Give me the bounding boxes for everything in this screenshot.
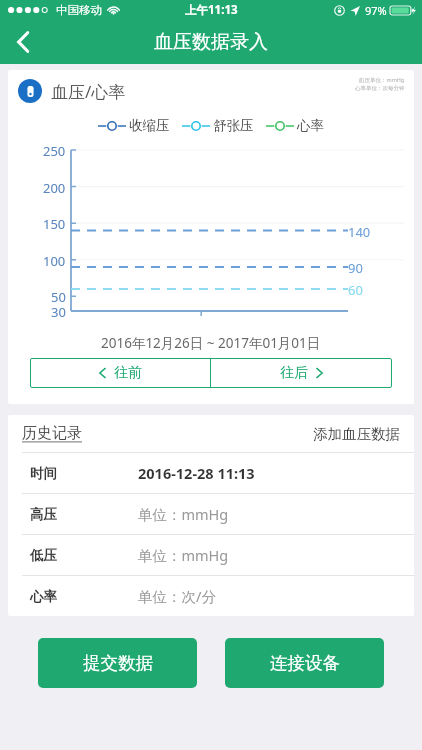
staticText: 低压 (30, 547, 57, 564)
staticText: 时间 (30, 465, 57, 482)
button[interactable]: 提交数据 (38, 638, 197, 688)
button[interactable]: 时间 (8, 452, 414, 493)
staticText: 血压数据录入 (154, 30, 268, 54)
staticText: 90 (348, 259, 363, 277)
staticText: 心率 (297, 117, 324, 134)
staticText: 30 (51, 303, 66, 321)
staticText: 上午11:13 (185, 2, 238, 18)
staticText: 收缩压 (129, 117, 170, 134)
staticText: 提交数据 (83, 652, 153, 674)
staticText: 心率 (30, 588, 57, 605)
button[interactable]: 高压 (8, 493, 414, 534)
staticText: 往前 (114, 364, 142, 382)
staticText: 单位：次/分 (138, 586, 216, 606)
button[interactable]: 历史记录 (22, 424, 82, 443)
staticText: 单位：mmHg (138, 504, 229, 524)
staticText: 250 (43, 142, 66, 160)
button[interactable]: Back (0, 20, 46, 64)
staticText: 60 (348, 281, 363, 299)
staticText: 单位：mmHg (138, 545, 229, 565)
staticText: 50 (51, 288, 66, 306)
staticText: 历史记录 (22, 424, 82, 443)
button[interactable]: 往前 (30, 358, 210, 388)
staticText: 连接设备 (270, 652, 340, 674)
staticText: 心率单位：次每分钟 (355, 85, 405, 92)
staticText: 150 (43, 215, 66, 233)
button[interactable]: 连接设备 (225, 638, 384, 688)
staticText: 添加血压数据 (313, 425, 400, 443)
staticText: 2016-12-28 11:13 (138, 463, 255, 483)
staticText: 血压/心率 (51, 80, 126, 103)
staticText: 97% (365, 3, 387, 18)
staticText: 舒张压 (213, 117, 254, 134)
staticText: 往后 (280, 364, 308, 382)
staticText: 高压 (30, 506, 57, 523)
staticText: 血压单位：mmHg (359, 76, 405, 84)
button[interactable]: 心率 (8, 575, 414, 616)
button[interactable]: 添加血压数据 (313, 425, 400, 443)
staticText: 100 (43, 252, 66, 270)
button[interactable]: 低压 (8, 534, 414, 575)
staticText: 中国移动 (56, 3, 102, 17)
staticText: 2016年12月26日 ~ 2017年01月01日 (101, 334, 321, 352)
button[interactable]: 往后 (211, 358, 392, 388)
staticText: 200 (43, 179, 66, 197)
staticText: 140 (348, 223, 371, 241)
